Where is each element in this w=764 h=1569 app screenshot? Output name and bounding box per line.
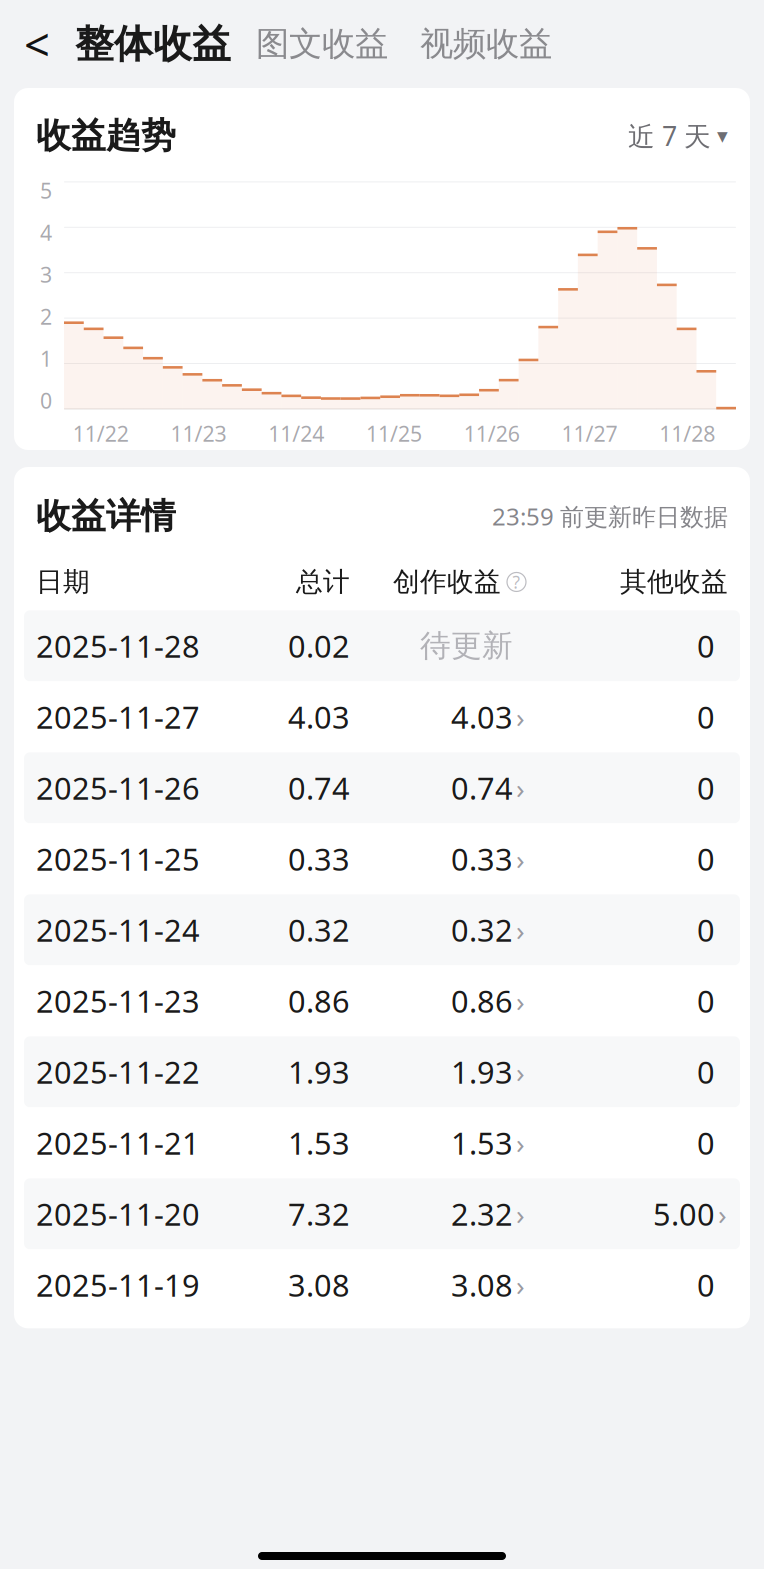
staticText: ›: [516, 982, 525, 1019]
staticText: 0: [697, 767, 715, 808]
button[interactable]: 2025-11-21: [24, 1107, 740, 1178]
staticText: 0.86: [451, 980, 513, 1021]
staticText: 5: [40, 176, 52, 204]
staticText: 0: [40, 386, 52, 414]
staticText: 0: [697, 625, 715, 666]
staticText: 11/27: [561, 419, 617, 448]
staticText: 2025-11-21: [36, 1122, 200, 1163]
staticText: 3.08: [288, 1264, 350, 1305]
staticText: ›: [516, 1266, 525, 1303]
button[interactable]: 2025-11-27: [24, 681, 740, 752]
staticText: 2: [40, 302, 52, 330]
staticText: 0: [697, 1264, 715, 1305]
staticText: 4: [40, 218, 52, 246]
staticText: 1.53: [451, 1122, 513, 1163]
staticText: ›: [516, 840, 525, 877]
button[interactable]: 图文收益: [240, 15, 404, 73]
button[interactable]: 2025-11-20: [24, 1178, 740, 1249]
staticText: 整体收益: [75, 20, 231, 68]
staticText: 2025-11-20: [36, 1193, 200, 1234]
button[interactable]: 2025-11-28: [24, 610, 740, 681]
staticText: 11/23: [171, 419, 227, 448]
staticText: 2025-11-23: [36, 980, 200, 1021]
staticText: ›: [516, 1053, 525, 1090]
staticText: 11/22: [73, 419, 129, 448]
staticText: 0.33: [451, 838, 513, 879]
staticText: 视频收益: [420, 23, 552, 64]
staticText: ›: [516, 698, 525, 735]
staticText: 11/28: [659, 419, 715, 448]
staticText: 1: [40, 344, 52, 372]
staticText: 收益详情: [36, 495, 176, 538]
staticText: 23:59 前更新昨日数据: [492, 500, 728, 532]
staticText: 创作收益: [393, 566, 501, 598]
staticText: ›: [516, 769, 525, 806]
staticText: ›: [516, 911, 525, 948]
staticText: 0.86: [288, 980, 350, 1021]
staticText: 3.08: [451, 1264, 513, 1305]
staticText: 近 7 天: [628, 118, 711, 153]
staticText: 2025-11-28: [36, 625, 200, 666]
button[interactable]: 2025-11-26: [24, 752, 740, 823]
staticText: 7.32: [288, 1193, 350, 1234]
button[interactable]: 视频收益: [404, 15, 568, 73]
staticText: 0: [697, 1051, 715, 1092]
staticText: 2.32: [451, 1193, 513, 1234]
staticText: 0.02: [288, 625, 350, 666]
staticText: 2025-11-24: [36, 909, 200, 950]
staticText: 4.03: [451, 696, 513, 737]
staticText: 0: [697, 696, 715, 737]
button[interactable]: 返回: [8, 15, 66, 73]
staticText: 2025-11-22: [36, 1051, 200, 1092]
staticText: 11/26: [464, 419, 520, 448]
staticText: 0.32: [451, 909, 513, 950]
staticText: 0.74: [451, 767, 513, 808]
staticText: 日期: [36, 566, 90, 598]
button[interactable]: 近 7 天: [628, 114, 728, 157]
staticText: 0: [697, 838, 715, 879]
staticText: ›: [516, 1124, 525, 1161]
staticText: 2025-11-27: [36, 696, 200, 737]
staticText: 图文收益: [256, 23, 388, 64]
staticText: 1.53: [288, 1122, 350, 1163]
button[interactable]: 整体收益: [66, 15, 240, 73]
staticText: ?: [512, 570, 520, 593]
staticText: 其他收益: [620, 566, 728, 598]
staticText: 0: [697, 1122, 715, 1163]
staticText: 0: [697, 909, 715, 950]
button[interactable]: 2025-11-24: [24, 894, 740, 965]
staticText: ›: [516, 1195, 525, 1232]
button[interactable]: 2025-11-19: [24, 1249, 740, 1320]
staticText: 总计: [296, 566, 350, 598]
staticText: ▾: [717, 124, 728, 148]
button[interactable]: 2025-11-25: [24, 823, 740, 894]
staticText: 0.32: [288, 909, 350, 950]
staticText: 1.93: [451, 1051, 513, 1092]
staticText: 0.33: [288, 838, 350, 879]
staticText: <: [24, 14, 50, 74]
staticText: 11/25: [366, 419, 422, 448]
staticText: 1.93: [288, 1051, 350, 1092]
staticText: ›: [718, 1195, 727, 1232]
staticText: 4.03: [288, 696, 350, 737]
staticText: 2025-11-26: [36, 767, 200, 808]
staticText: 待更新: [420, 627, 513, 665]
staticText: 3: [40, 260, 52, 288]
button[interactable]: 2025-11-22: [24, 1036, 740, 1107]
button[interactable]: 2025-11-23: [24, 965, 740, 1036]
staticText: 0.74: [288, 767, 350, 808]
staticText: 5.00: [653, 1193, 715, 1234]
staticText: 2025-11-19: [36, 1264, 200, 1305]
staticText: 收益趋势: [36, 114, 176, 157]
staticText: 11/24: [268, 419, 324, 448]
staticText: 2025-11-25: [36, 838, 200, 879]
